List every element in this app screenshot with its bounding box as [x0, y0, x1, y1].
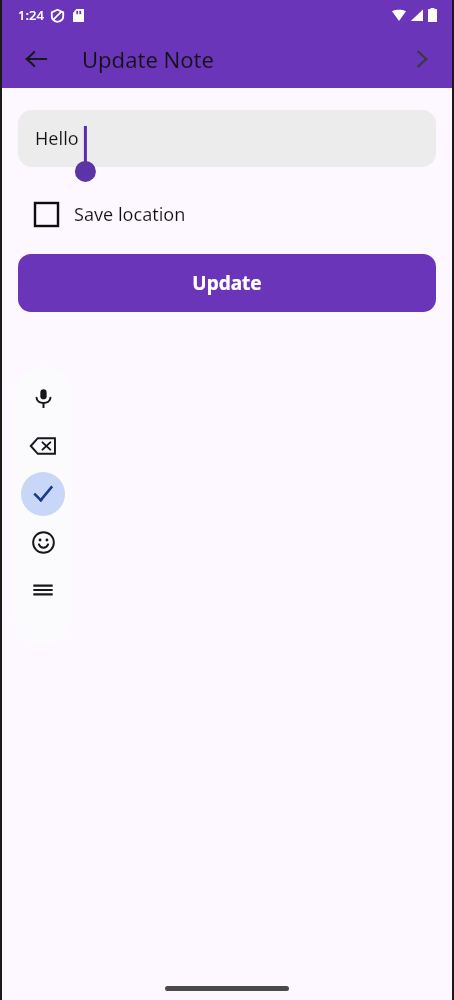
staticText: Update Note: [82, 44, 214, 74]
staticText: Save location: [74, 202, 186, 227]
button[interactable]: Hello: [18, 110, 436, 167]
button[interactable]: Emoji: [19, 518, 67, 566]
staticText: Hello: [35, 126, 79, 151]
button[interactable]: Voice input: [19, 374, 67, 422]
button[interactable]: Update: [18, 254, 436, 312]
button[interactable]: Next: [398, 35, 446, 83]
staticText: 1:24: [18, 6, 44, 24]
staticText: Update: [192, 270, 262, 296]
button[interactable]: Confirm: [19, 470, 67, 518]
button[interactable]: Menu: [19, 566, 67, 614]
button[interactable]: Back: [12, 35, 60, 83]
button[interactable]: Backspace: [19, 422, 67, 470]
button[interactable]: Save location: [29, 197, 192, 232]
